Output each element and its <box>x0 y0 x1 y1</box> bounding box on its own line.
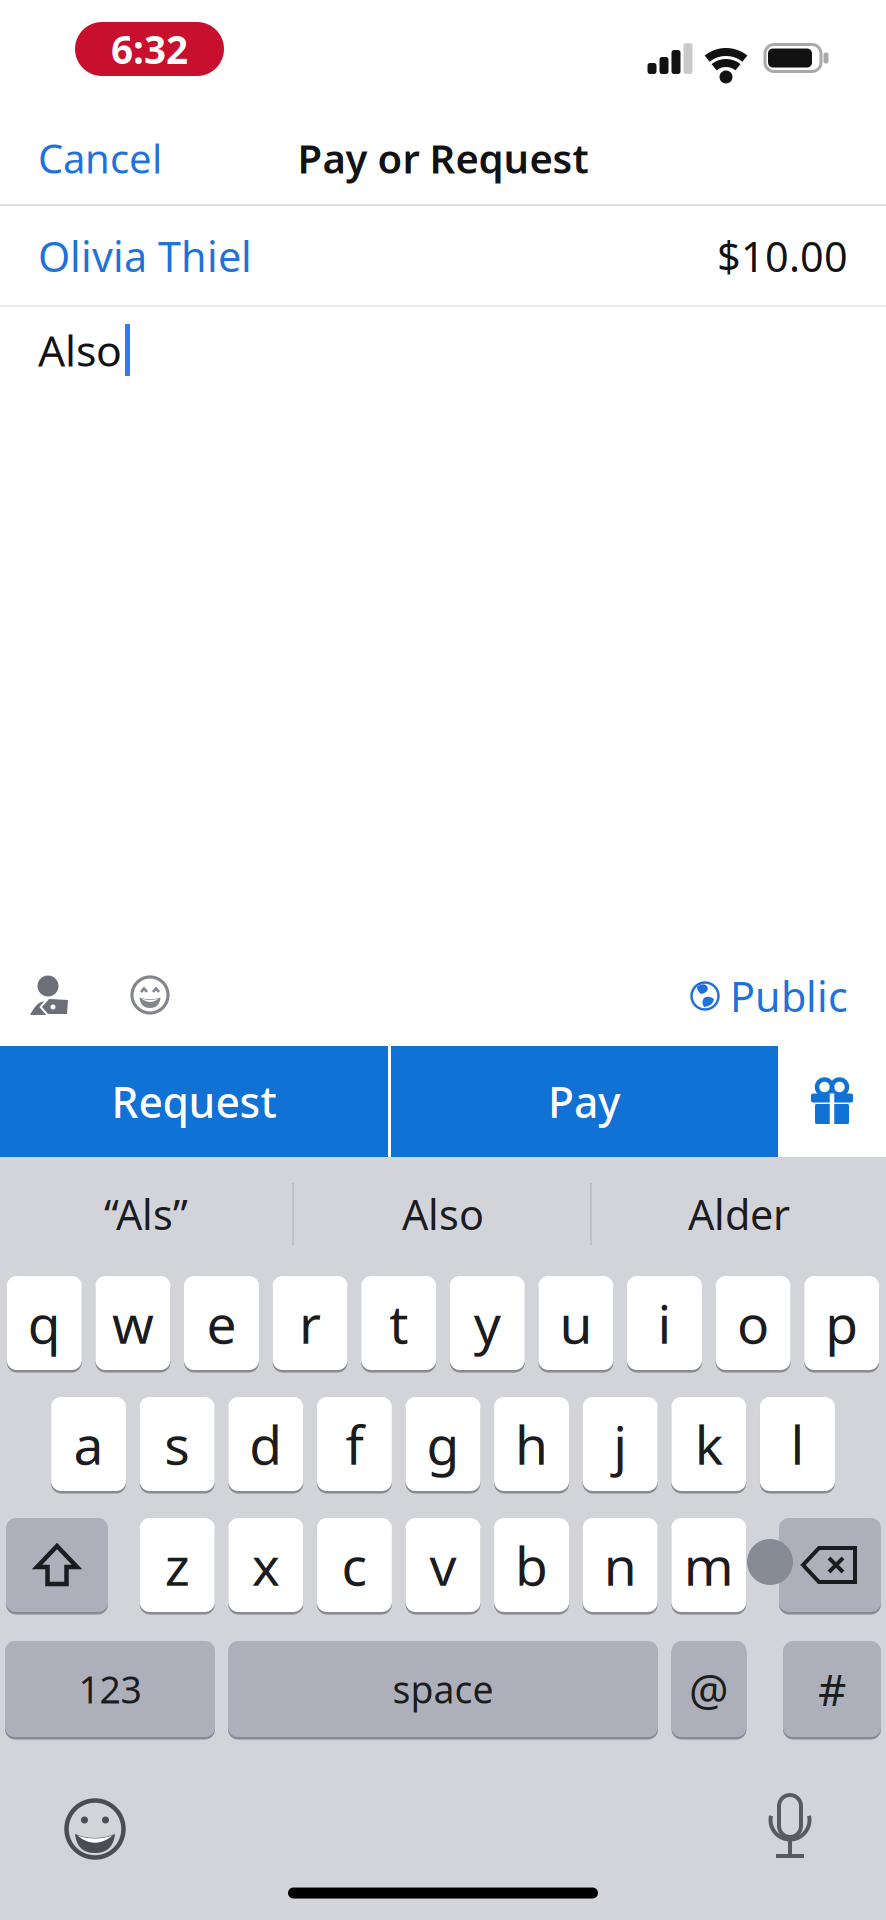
button[interactable]: a <box>51 1395 126 1492</box>
staticText: t <box>389 1288 408 1358</box>
button[interactable]: x <box>228 1516 303 1613</box>
button[interactable]: Shift <box>6 1516 108 1613</box>
staticText: Public <box>730 969 848 1023</box>
staticText: “Als” <box>104 1187 188 1241</box>
button[interactable]: t <box>361 1274 436 1371</box>
staticText: Request <box>111 1073 276 1130</box>
button[interactable]: w <box>95 1274 170 1371</box>
staticText: d <box>249 1409 282 1479</box>
button[interactable]: z <box>140 1516 215 1613</box>
staticText: j <box>613 1409 627 1479</box>
button[interactable]: Request <box>0 1046 388 1157</box>
staticText: 123 <box>78 1664 141 1714</box>
button[interactable]: p <box>804 1274 879 1371</box>
button[interactable]: b <box>494 1516 569 1613</box>
button[interactable]: “Als” <box>1 1164 291 1264</box>
staticText: e <box>206 1288 236 1358</box>
button[interactable]: l <box>760 1395 835 1492</box>
button[interactable]: Delete <box>779 1516 881 1613</box>
staticText: a <box>74 1409 104 1479</box>
staticText: r <box>299 1288 321 1358</box>
staticText: 6:32 <box>111 23 188 75</box>
staticText: m <box>684 1530 734 1600</box>
button[interactable]: s <box>140 1395 215 1492</box>
button[interactable]: Emoji keyboard <box>64 1798 126 1860</box>
staticText: Cancel <box>38 131 162 184</box>
button[interactable]: r <box>273 1274 348 1371</box>
staticText: Also <box>38 322 122 378</box>
staticText: b <box>515 1530 548 1600</box>
button[interactable]: # <box>783 1639 881 1738</box>
button[interactable]: f <box>317 1395 392 1492</box>
button[interactable]: Dictation <box>766 1795 814 1861</box>
button[interactable]: e <box>184 1274 259 1371</box>
staticText: $10.00 <box>717 229 848 283</box>
staticText: c <box>341 1530 367 1600</box>
staticText: z <box>165 1530 190 1600</box>
button[interactable]: y <box>450 1274 525 1371</box>
button[interactable]: space <box>228 1639 658 1738</box>
button[interactable]: Add emoji <box>130 975 170 1015</box>
staticText: u <box>559 1288 592 1358</box>
button[interactable]: g <box>405 1395 480 1492</box>
staticText: p <box>825 1288 858 1358</box>
button[interactable]: n <box>583 1516 658 1613</box>
button[interactable]: o <box>716 1274 791 1371</box>
button[interactable]: k <box>671 1395 746 1492</box>
staticText: space <box>392 1664 493 1714</box>
staticText: Also <box>402 1187 484 1241</box>
staticText: v <box>429 1530 456 1600</box>
button[interactable]: q <box>7 1274 82 1371</box>
staticText: Pay <box>548 1073 621 1130</box>
button[interactable]: i <box>627 1274 702 1371</box>
button[interactable]: d <box>228 1395 303 1492</box>
staticText: h <box>515 1409 548 1479</box>
button[interactable]: Olivia Thiel <box>38 229 252 283</box>
button[interactable]: c <box>317 1516 392 1613</box>
staticText: o <box>737 1288 769 1358</box>
staticText: y <box>474 1288 501 1358</box>
staticText: # <box>818 1660 846 1718</box>
staticText: k <box>695 1409 723 1479</box>
button[interactable]: Pay <box>391 1046 778 1157</box>
button[interactable]: Tag a friend <box>30 974 70 1016</box>
button[interactable]: m <box>671 1516 746 1613</box>
button[interactable]: h <box>494 1395 569 1492</box>
staticText: Alder <box>688 1187 790 1241</box>
button[interactable]: Cancel <box>38 131 278 184</box>
staticText: @ <box>689 1660 729 1718</box>
staticText: f <box>345 1409 363 1479</box>
button[interactable]: @ <box>671 1639 746 1738</box>
staticText: q <box>28 1288 61 1358</box>
staticText: x <box>252 1530 280 1600</box>
button[interactable]: Screen recording <box>75 22 224 76</box>
button[interactable]: Alder <box>594 1164 884 1264</box>
staticText: i <box>657 1288 671 1358</box>
button[interactable]: u <box>538 1274 613 1371</box>
staticText: s <box>164 1409 190 1479</box>
button[interactable]: v <box>405 1516 480 1613</box>
button[interactable]: j <box>583 1395 658 1492</box>
staticText: g <box>426 1409 459 1479</box>
staticText: l <box>790 1409 804 1479</box>
button[interactable]: 123 <box>5 1639 215 1738</box>
staticText: Olivia Thiel <box>38 229 252 283</box>
button[interactable]: $10.00 <box>717 229 848 283</box>
staticText: Pay or Request <box>297 131 588 184</box>
staticText: w <box>112 1288 154 1358</box>
button[interactable]: Also <box>298 1164 588 1264</box>
button[interactable]: Public <box>548 969 848 1023</box>
button[interactable]: Send as gift <box>778 1046 886 1157</box>
staticText: n <box>604 1530 637 1600</box>
